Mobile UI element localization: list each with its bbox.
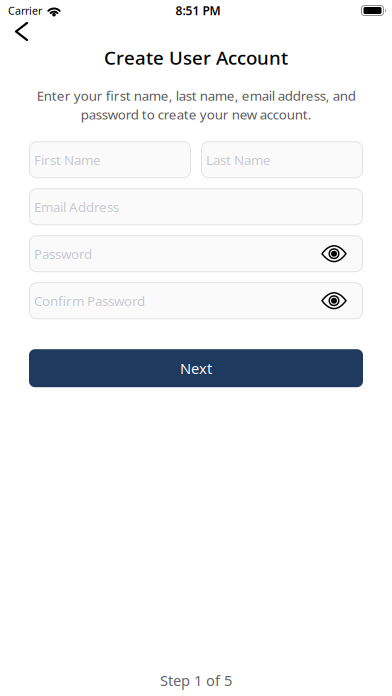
staticText: Step 1 of 5 [160, 670, 232, 690]
staticText: Email Address [34, 198, 119, 215]
button[interactable]: Show password [322, 293, 346, 308]
button[interactable]: Next [29, 349, 363, 387]
staticText: Next [180, 358, 212, 378]
staticText: Last Name [206, 151, 271, 168]
staticText: Confirm Password [34, 292, 145, 309]
button[interactable]: Show password [322, 246, 346, 261]
staticText: Create User Account [104, 45, 288, 70]
button[interactable]: Back [0, 21, 27, 42]
staticText: First Name [34, 151, 101, 168]
staticText: 8:51 PM [175, 2, 220, 18]
staticText: Enter your first name, last name, email … [36, 87, 355, 123]
staticText: Password [34, 245, 92, 262]
staticText: Carrier [8, 3, 42, 18]
